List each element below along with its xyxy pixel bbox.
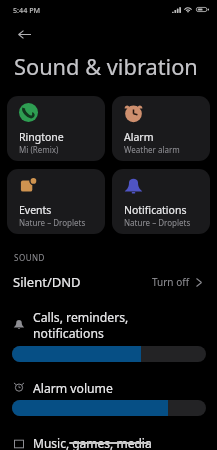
button[interactable]: Back [11,21,37,47]
staticText: Music, games, media [33,435,152,450]
staticText: Sound & vibration [14,52,198,82]
staticText: Silent/DND [13,273,81,291]
button[interactable]: Silent/DND [0,268,217,296]
staticText: Mi (Remix) [19,144,59,155]
button[interactable]: Notifications [112,169,210,234]
button[interactable]: Events [7,169,105,234]
staticText: Events [19,203,52,217]
button[interactable]: Alarm [112,96,210,161]
button[interactable] [12,346,206,362]
staticText: Turn off [152,275,190,289]
staticText: 5:44 PM [13,5,41,15]
staticText: Ringtone [19,130,64,144]
staticText: Alarm volume [33,380,113,397]
button[interactable]: Ringtone [7,96,105,161]
button[interactable] [12,400,206,416]
staticText: Alarm [124,130,154,144]
staticText: notifications [33,325,104,342]
staticText: SOUND [14,252,45,263]
staticText: Weather alarm [124,144,180,155]
staticText: Nature – Droplets [19,217,86,228]
staticText: Calls, reminders, [33,309,129,326]
staticText: Nature – Droplets [124,217,191,228]
staticText: Notifications [124,203,187,217]
